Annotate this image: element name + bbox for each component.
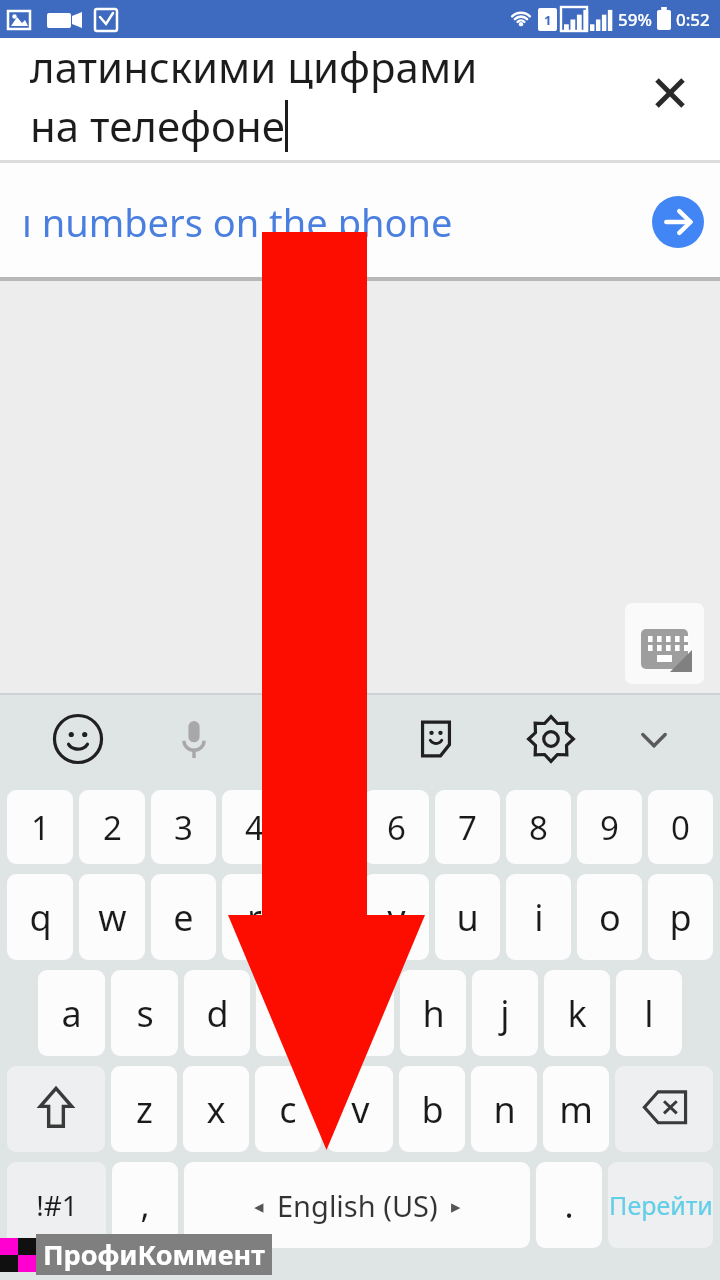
button[interactable]: ◂: [184, 1162, 530, 1248]
staticText: r: [247, 893, 262, 942]
staticText: m: [559, 1085, 593, 1134]
staticText: 7: [458, 805, 477, 850]
button[interactable]: y: [364, 874, 429, 960]
staticText: на телефоне: [30, 97, 285, 154]
staticText: a: [61, 989, 82, 1038]
button[interactable]: s: [111, 970, 178, 1056]
staticText: !#1: [36, 1186, 78, 1224]
staticText: 59%: [618, 8, 652, 31]
staticText: ▸: [451, 1195, 461, 1217]
staticText: x: [206, 1085, 226, 1134]
staticText: English (US): [277, 1186, 438, 1225]
staticText: h: [422, 989, 445, 1038]
button[interactable]: i: [506, 874, 571, 960]
staticText: .: [564, 1182, 574, 1228]
staticText: d: [206, 989, 229, 1038]
button[interactable]: q: [7, 874, 73, 960]
button[interactable]: !#1: [7, 1162, 106, 1248]
staticText: ,: [140, 1182, 150, 1228]
button[interactable]: Settings: [493, 693, 608, 785]
button[interactable]: u: [435, 874, 500, 960]
button[interactable]: Backspace: [615, 1066, 713, 1152]
button[interactable]: j: [472, 970, 538, 1056]
staticText: j: [500, 989, 510, 1038]
staticText: 2: [103, 805, 122, 850]
button[interactable]: Hide keyboard: [608, 693, 700, 785]
staticText: i: [534, 893, 544, 942]
button[interactable]: n: [471, 1066, 537, 1152]
button[interactable]: c: [255, 1066, 321, 1152]
button[interactable]: ,: [112, 1162, 178, 1248]
button[interactable]: .: [536, 1162, 602, 1248]
button[interactable]: k: [544, 970, 610, 1056]
button[interactable]: ı numbers on the phone: [0, 163, 720, 281]
staticText: p: [669, 893, 692, 942]
staticText: латинскими цифрами: [30, 38, 478, 95]
button[interactable]: Resize keyboard: [625, 603, 704, 684]
button[interactable]: 4: [222, 790, 287, 864]
button[interactable]: Translate: [652, 196, 704, 248]
button[interactable]: g: [328, 970, 394, 1056]
staticText: c: [279, 1085, 297, 1134]
button[interactable]: 6: [364, 790, 429, 864]
staticText: z: [136, 1085, 153, 1134]
staticText: v: [351, 1085, 370, 1134]
button[interactable]: p: [648, 874, 713, 960]
button[interactable]: m: [543, 1066, 609, 1152]
staticText: b: [421, 1085, 444, 1134]
button[interactable]: r: [222, 874, 287, 960]
staticText: 4: [245, 805, 264, 850]
button[interactable]: e: [151, 874, 216, 960]
button[interactable]: 2: [79, 790, 145, 864]
staticText: l: [644, 989, 654, 1038]
staticText: ı numbers on the phone: [22, 196, 652, 248]
button[interactable]: Перейти: [608, 1162, 713, 1248]
button[interactable]: w: [79, 874, 145, 960]
staticText: e: [173, 893, 194, 942]
staticText: 1: [544, 11, 552, 29]
button[interactable]: Voice input: [136, 693, 251, 785]
staticText: ◂: [254, 1195, 264, 1217]
button[interactable]: 3: [151, 790, 216, 864]
button[interactable]: x: [183, 1066, 249, 1152]
staticText: s: [136, 989, 154, 1038]
staticText: Перейти: [609, 1188, 713, 1222]
button[interactable]: 7: [435, 790, 500, 864]
staticText: 6: [387, 805, 406, 850]
staticText: 3: [174, 805, 193, 850]
button[interactable]: f: [256, 970, 322, 1056]
button[interactable]: h: [400, 970, 466, 1056]
staticText: o: [599, 893, 621, 942]
staticText: ПрофиКоммент: [43, 1236, 265, 1273]
staticText: 1: [31, 805, 50, 850]
staticText: 0:52: [676, 8, 710, 31]
button[interactable]: 0: [648, 790, 713, 864]
button[interactable]: d: [184, 970, 250, 1056]
staticText: u: [456, 893, 479, 942]
button[interactable]: v: [327, 1066, 393, 1152]
staticText: 0: [671, 805, 690, 850]
button[interactable]: Shift: [7, 1066, 105, 1152]
button[interactable]: 9: [577, 790, 642, 864]
button[interactable]: Emoji: [20, 693, 136, 785]
staticText: k: [567, 989, 587, 1038]
staticText: n: [493, 1085, 516, 1134]
button[interactable]: 1: [7, 790, 73, 864]
staticText: q: [29, 893, 52, 942]
button[interactable]: o: [577, 874, 642, 960]
button[interactable]: Clear text: [646, 69, 694, 117]
button[interactable]: 8: [506, 790, 571, 864]
staticText: 9: [600, 805, 619, 850]
button[interactable]: l: [616, 970, 682, 1056]
staticText: y: [387, 893, 406, 942]
button[interactable]: a: [38, 970, 105, 1056]
button[interactable]: Stickers: [378, 693, 493, 785]
button[interactable]: z: [111, 1066, 177, 1152]
button[interactable]: b: [399, 1066, 465, 1152]
